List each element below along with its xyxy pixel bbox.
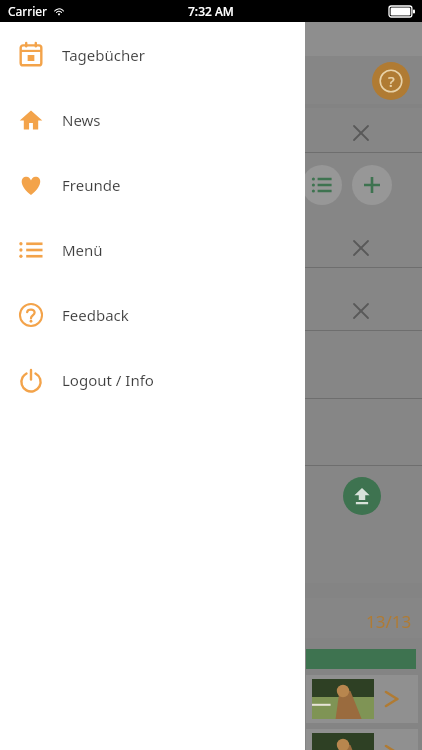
staticText: 13/13 [366, 610, 412, 633]
staticText: 7:32 AM [188, 3, 234, 19]
button[interactable]: Hilfe [372, 62, 410, 100]
button[interactable]: Freunde [0, 152, 305, 217]
button[interactable]: Menü [0, 217, 305, 282]
staticText: Feedback [62, 305, 129, 325]
staticText: Menü [62, 240, 103, 260]
button[interactable]: Tagebücher [0, 22, 305, 87]
button[interactable] [306, 729, 418, 750]
button[interactable]: Löschen [350, 122, 372, 144]
button[interactable]: News [0, 87, 305, 152]
staticText: Freunde [62, 175, 121, 195]
button[interactable]: Feedback [0, 282, 305, 347]
button[interactable]: Löschen [350, 300, 372, 322]
staticText: Logout / Info [62, 370, 154, 390]
button[interactable]: Logout / Info [0, 347, 305, 412]
staticText: News [62, 110, 101, 130]
button[interactable] [306, 675, 418, 723]
button[interactable]: Hochladen [343, 477, 381, 515]
staticText: Tagebücher [62, 45, 145, 65]
button[interactable]: Liste [302, 165, 342, 205]
staticText: Carrier [8, 3, 48, 19]
staticText: ? [388, 71, 395, 91]
button[interactable]: Hinzufügen [352, 165, 392, 205]
button[interactable]: Löschen [350, 237, 372, 259]
